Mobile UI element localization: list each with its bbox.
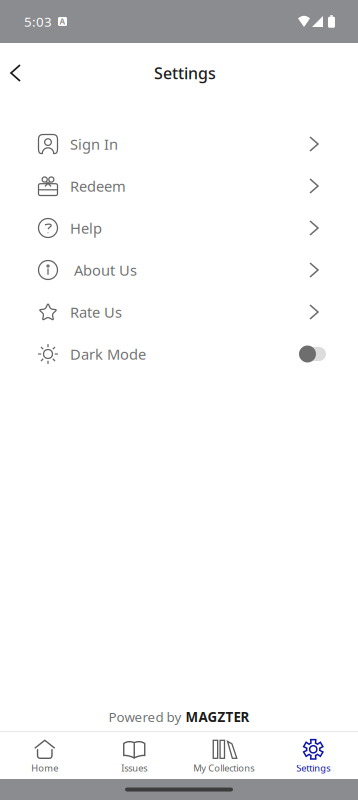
staticText: Issues bbox=[121, 762, 147, 774]
staticText: Settings bbox=[296, 762, 330, 774]
button[interactable]: Dark Mode bbox=[0, 333, 358, 375]
button[interactable]: Back bbox=[0, 52, 36, 94]
staticText: Settings bbox=[154, 62, 216, 84]
button[interactable]: Home bbox=[0, 731, 89, 779]
staticText: Home bbox=[31, 762, 58, 774]
button[interactable]: Settings bbox=[268, 731, 358, 779]
staticText: Powered by bbox=[108, 708, 181, 726]
staticText: Rate Us bbox=[70, 302, 122, 322]
staticText: Sign In bbox=[70, 134, 118, 154]
button[interactable]: Redeem bbox=[0, 165, 358, 207]
staticText: Redeem bbox=[70, 176, 126, 196]
button[interactable]: My Collections bbox=[179, 731, 268, 779]
button[interactable]: Issues bbox=[89, 731, 179, 779]
button[interactable]: Help bbox=[0, 207, 358, 249]
staticText: My Collections bbox=[193, 762, 254, 774]
staticText: About Us bbox=[70, 260, 137, 280]
staticText: Help bbox=[70, 218, 102, 238]
staticText: Dark Mode bbox=[70, 344, 146, 364]
staticText: MAGZTER bbox=[185, 708, 249, 726]
button[interactable]: Sign In bbox=[0, 123, 358, 165]
staticText: A bbox=[59, 16, 65, 27]
button[interactable]: Dark Mode bbox=[299, 345, 318, 362]
staticText: 5:03 bbox=[24, 13, 52, 30]
button[interactable]: About Us bbox=[0, 249, 358, 291]
button[interactable]: Rate Us bbox=[0, 291, 358, 333]
